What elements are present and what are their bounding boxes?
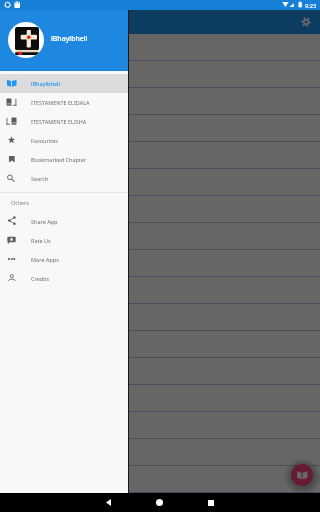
staticText: Rate Us (31, 237, 51, 244)
staticText: UDuteronomi (12, 151, 57, 161)
button[interactable]: 2 AmaKhosi (0, 331, 320, 358)
button[interactable]: AbAhluleli (0, 196, 320, 223)
button[interactable]: U-Ezra (0, 412, 320, 439)
staticText: Search (31, 175, 49, 182)
staticText: UJoshuwa (12, 178, 45, 188)
button[interactable]: Home (151, 494, 168, 511)
staticText: 1 Samuweli (12, 259, 50, 269)
staticText: Others (11, 199, 29, 207)
staticText: Favourites (31, 137, 58, 144)
staticText: u-Eksodusi (12, 70, 48, 80)
staticText: ULevitikusi (12, 97, 48, 107)
staticText: Bookmarked Chapter (31, 156, 87, 163)
staticText: Share App (31, 218, 58, 225)
button[interactable]: UDuteronomi (0, 142, 320, 169)
button[interactable]: Continue reading (291, 464, 313, 486)
button[interactable]: ITESTAMENTE ELISHA (0, 112, 128, 131)
button[interactable]: Credits (0, 269, 128, 288)
button[interactable]: Favourites (0, 131, 128, 150)
button[interactable]: Settings (297, 13, 315, 31)
button[interactable]: Bookmarked Chapter (0, 150, 128, 169)
staticText: iBhayibheli (31, 80, 61, 87)
button[interactable]: UJoshuwa (0, 169, 320, 196)
button[interactable]: More Apps (0, 250, 128, 269)
button[interactable]: iBhayibheli (0, 74, 128, 93)
staticText: uGenesise (12, 43, 47, 53)
button[interactable]: 2 Samuweli (0, 277, 320, 304)
button[interactable]: URuthe (0, 223, 320, 250)
staticText: ITESTAMENTE ELISHA (31, 118, 87, 125)
button[interactable]: Back (100, 494, 117, 511)
staticText: 9:23 (305, 2, 317, 10)
button[interactable]: uGenesise (0, 34, 320, 61)
button[interactable]: 1 Samuweli (0, 250, 320, 277)
button[interactable]: Share App (0, 212, 128, 231)
button[interactable]: ULevitikusi (0, 88, 320, 115)
button[interactable]: Recent apps (202, 494, 219, 511)
button[interactable]: ITESTAMENTE ELIDALA (0, 93, 128, 112)
button[interactable]: U-Esteri (0, 466, 320, 493)
staticText: URuthe (12, 232, 37, 242)
button[interactable]: Search (0, 169, 128, 188)
button[interactable]: 1 IziKronike (0, 358, 320, 385)
staticText: More Apps (31, 256, 59, 263)
staticText: AmaNani (12, 124, 43, 134)
button[interactable]: 2 IziKronike (0, 385, 320, 412)
button[interactable]: Rate Us (0, 231, 128, 250)
button[interactable]: AmaNani (0, 115, 320, 142)
button[interactable]: u-Eksodusi (0, 61, 320, 88)
staticText: Credits (31, 275, 50, 282)
button[interactable]: UJobe (0, 493, 320, 512)
button[interactable]: UNehemiya (0, 439, 320, 466)
staticText: iBhayibheli (51, 34, 88, 43)
staticText: ITESTAMENTE ELIDALA (31, 99, 90, 106)
button[interactable]: 1 AmaKhosi (0, 304, 320, 331)
